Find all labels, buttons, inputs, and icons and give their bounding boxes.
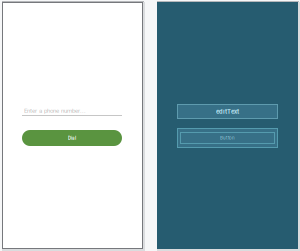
staticText: editText bbox=[216, 108, 239, 115]
staticText: Button bbox=[220, 135, 235, 141]
button[interactable]: Enter a phone number... bbox=[22, 102, 122, 116]
button[interactable]: editText bbox=[177, 104, 278, 119]
staticText: Dial bbox=[68, 135, 76, 141]
button[interactable]: Button bbox=[177, 128, 278, 148]
staticText: Enter a phone number... bbox=[24, 107, 86, 114]
button[interactable]: Dial bbox=[22, 130, 122, 146]
